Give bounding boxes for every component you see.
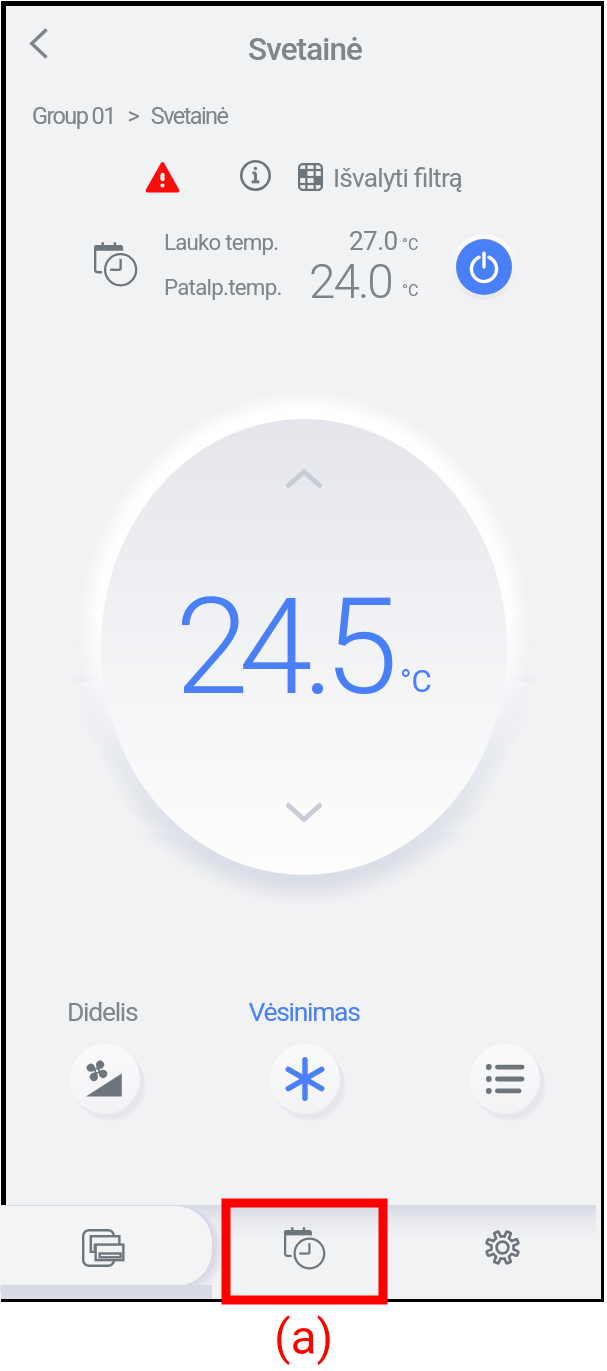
button[interactable]: Back — [15, 20, 61, 66]
button[interactable]: Schedule — [88, 237, 144, 293]
button[interactable]: Išvalyti filtrą — [286, 155, 476, 199]
staticText: °C — [402, 235, 419, 254]
button[interactable]: Fan speed — [70, 1044, 140, 1114]
staticText: Didelis — [67, 996, 138, 1027]
staticText: 27.0 — [349, 226, 398, 256]
staticText: (a) — [274, 1309, 334, 1365]
button[interactable]: Decrease temperature — [264, 783, 344, 841]
staticText: 24.5 — [175, 570, 389, 726]
button[interactable]: Indoor units — [1, 1205, 209, 1299]
button[interactable]: Settings — [396, 1205, 596, 1299]
button[interactable]: Info — [233, 153, 277, 197]
staticText: 24.0 — [309, 254, 392, 310]
staticText: Patalp.temp. — [164, 274, 282, 300]
button[interactable]: Power — [451, 234, 517, 300]
button[interactable]: Cooling mode — [270, 1044, 340, 1114]
staticText: Išvalyti filtrą — [333, 163, 463, 194]
button[interactable]: More options — [470, 1044, 540, 1114]
button[interactable]: Increase temperature — [264, 449, 344, 507]
staticText: Group 01 > Svetainė — [32, 102, 228, 130]
staticText: Vėsinimas — [248, 996, 360, 1027]
button[interactable]: Warning — [141, 156, 183, 198]
button[interactable]: Schedule — [209, 1205, 396, 1299]
staticText: °C — [400, 663, 432, 699]
staticText: Lauko temp. — [164, 229, 279, 255]
staticText: Svetainė — [248, 31, 362, 68]
staticText: °C — [402, 281, 419, 300]
